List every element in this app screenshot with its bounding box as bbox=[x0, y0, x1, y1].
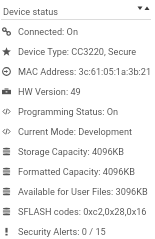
staticText: MAC Address: 3c:61:05:1a:3b:21 bbox=[18, 66, 152, 77]
staticText: Storage Capacity: 4096KB bbox=[18, 146, 125, 157]
staticText: HW Version: 49 bbox=[18, 86, 81, 97]
button[interactable]: Available for User Files: 3096KB bbox=[0, 181, 155, 201]
staticText: Device Type: CC3220, Secure bbox=[18, 46, 137, 57]
staticText: Connected: On bbox=[18, 26, 79, 37]
staticText: Programming Status: On bbox=[18, 106, 119, 117]
button[interactable]: Device Type: CC3220, Secure bbox=[0, 41, 155, 61]
button[interactable]: Current Mode: Development bbox=[0, 121, 155, 141]
staticText: Current Mode: Development bbox=[18, 126, 132, 137]
button[interactable]: HW Version: 49 bbox=[0, 81, 155, 101]
staticText: Security Alerts: 0 / 15 bbox=[18, 226, 106, 237]
button[interactable]: SFLASH codes: 0xc2,0x28,0x16 bbox=[0, 201, 155, 221]
button[interactable]: Security Alerts: 0 / 15 bbox=[0, 221, 155, 239]
button[interactable]: Programming Status: On bbox=[0, 101, 155, 121]
button[interactable]: Connected: On bbox=[0, 21, 155, 41]
staticText: SFLASH codes: 0xc2,0x28,0x16 bbox=[18, 206, 147, 217]
staticText: Formatted Capacity: 4096KB bbox=[18, 166, 135, 177]
button[interactable]: Expand bbox=[144, 2, 150, 14]
button[interactable]: Collapse bbox=[137, 2, 143, 14]
button[interactable]: MAC Address: 3c:61:05:1a:3b:21 bbox=[0, 61, 155, 81]
staticText: Available for User Files: 3096KB bbox=[18, 186, 148, 197]
button[interactable]: Formatted Capacity: 4096KB bbox=[0, 161, 155, 181]
staticText: Device status bbox=[3, 6, 59, 17]
button[interactable]: Storage Capacity: 4096KB bbox=[0, 141, 155, 161]
